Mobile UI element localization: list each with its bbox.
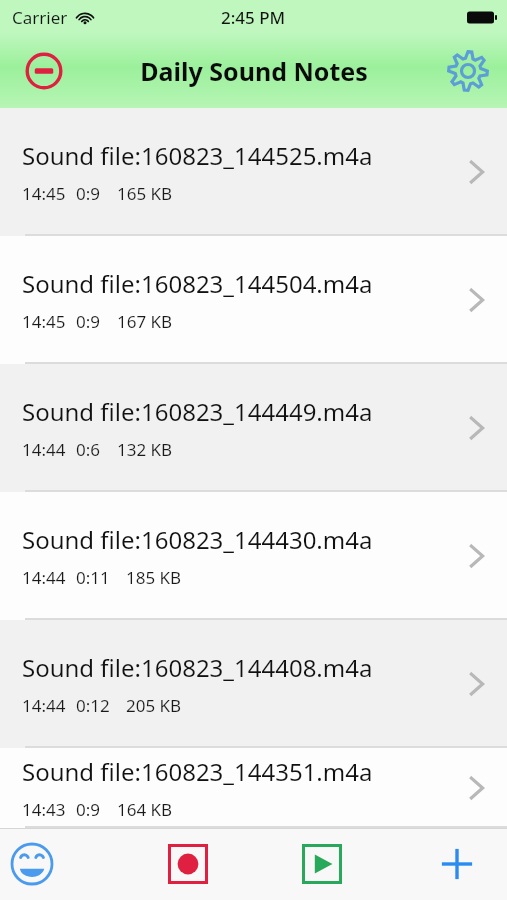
staticText: 167 KB [117, 310, 173, 333]
button[interactable]: Record [126, 828, 253, 900]
staticText: 14:44 [22, 566, 66, 589]
staticText: Sound file:160823_144504.m4a [22, 267, 373, 300]
staticText: Sound file:160823_144430.m4a [22, 523, 373, 556]
button[interactable]: Mood [0, 828, 126, 900]
button[interactable]: Sound file:160823_144408.m4a [0, 620, 507, 748]
staticText: 0:12 [76, 694, 110, 717]
button[interactable]: Sound file:160823_144430.m4a [0, 492, 507, 620]
staticText: 14:45 [22, 182, 66, 205]
button[interactable]: Settings [443, 46, 493, 96]
staticText: 14:44 [22, 694, 66, 717]
button[interactable]: Add [380, 828, 507, 900]
staticText: 205 KB [126, 694, 182, 717]
staticText: 132 KB [117, 438, 173, 461]
staticText: 0:9 [76, 182, 101, 205]
staticText: 0:9 [76, 310, 101, 333]
staticText: 165 KB [117, 182, 173, 205]
staticText: Daily Sound Notes [140, 54, 368, 88]
staticText: 0:11 [76, 566, 110, 589]
staticText: 2:45 PM [221, 6, 286, 29]
staticText: 0:6 [76, 438, 101, 461]
staticText: Sound file:160823_144449.m4a [22, 395, 373, 428]
button[interactable]: Sound file:160823_144351.m4a [0, 748, 507, 828]
staticText: 14:45 [22, 310, 66, 333]
button[interactable]: Sound file:160823_144525.m4a [0, 108, 507, 236]
button[interactable]: Sound file:160823_144449.m4a [0, 364, 507, 492]
button[interactable]: Delete [20, 47, 68, 95]
staticText: Carrier [12, 6, 68, 29]
button[interactable]: Sound file:160823_144504.m4a [0, 236, 507, 364]
staticText: Sound file:160823_144408.m4a [22, 651, 373, 684]
staticText: 14:44 [22, 438, 66, 461]
staticText: 185 KB [126, 566, 182, 589]
staticText: Sound file:160823_144351.m4a [22, 755, 373, 788]
staticText: Sound file:160823_144525.m4a [22, 139, 373, 172]
staticText: 0:9 [76, 798, 101, 821]
staticText: 164 KB [117, 798, 173, 821]
staticText: 14:43 [22, 798, 66, 821]
button[interactable]: Play [253, 828, 380, 900]
